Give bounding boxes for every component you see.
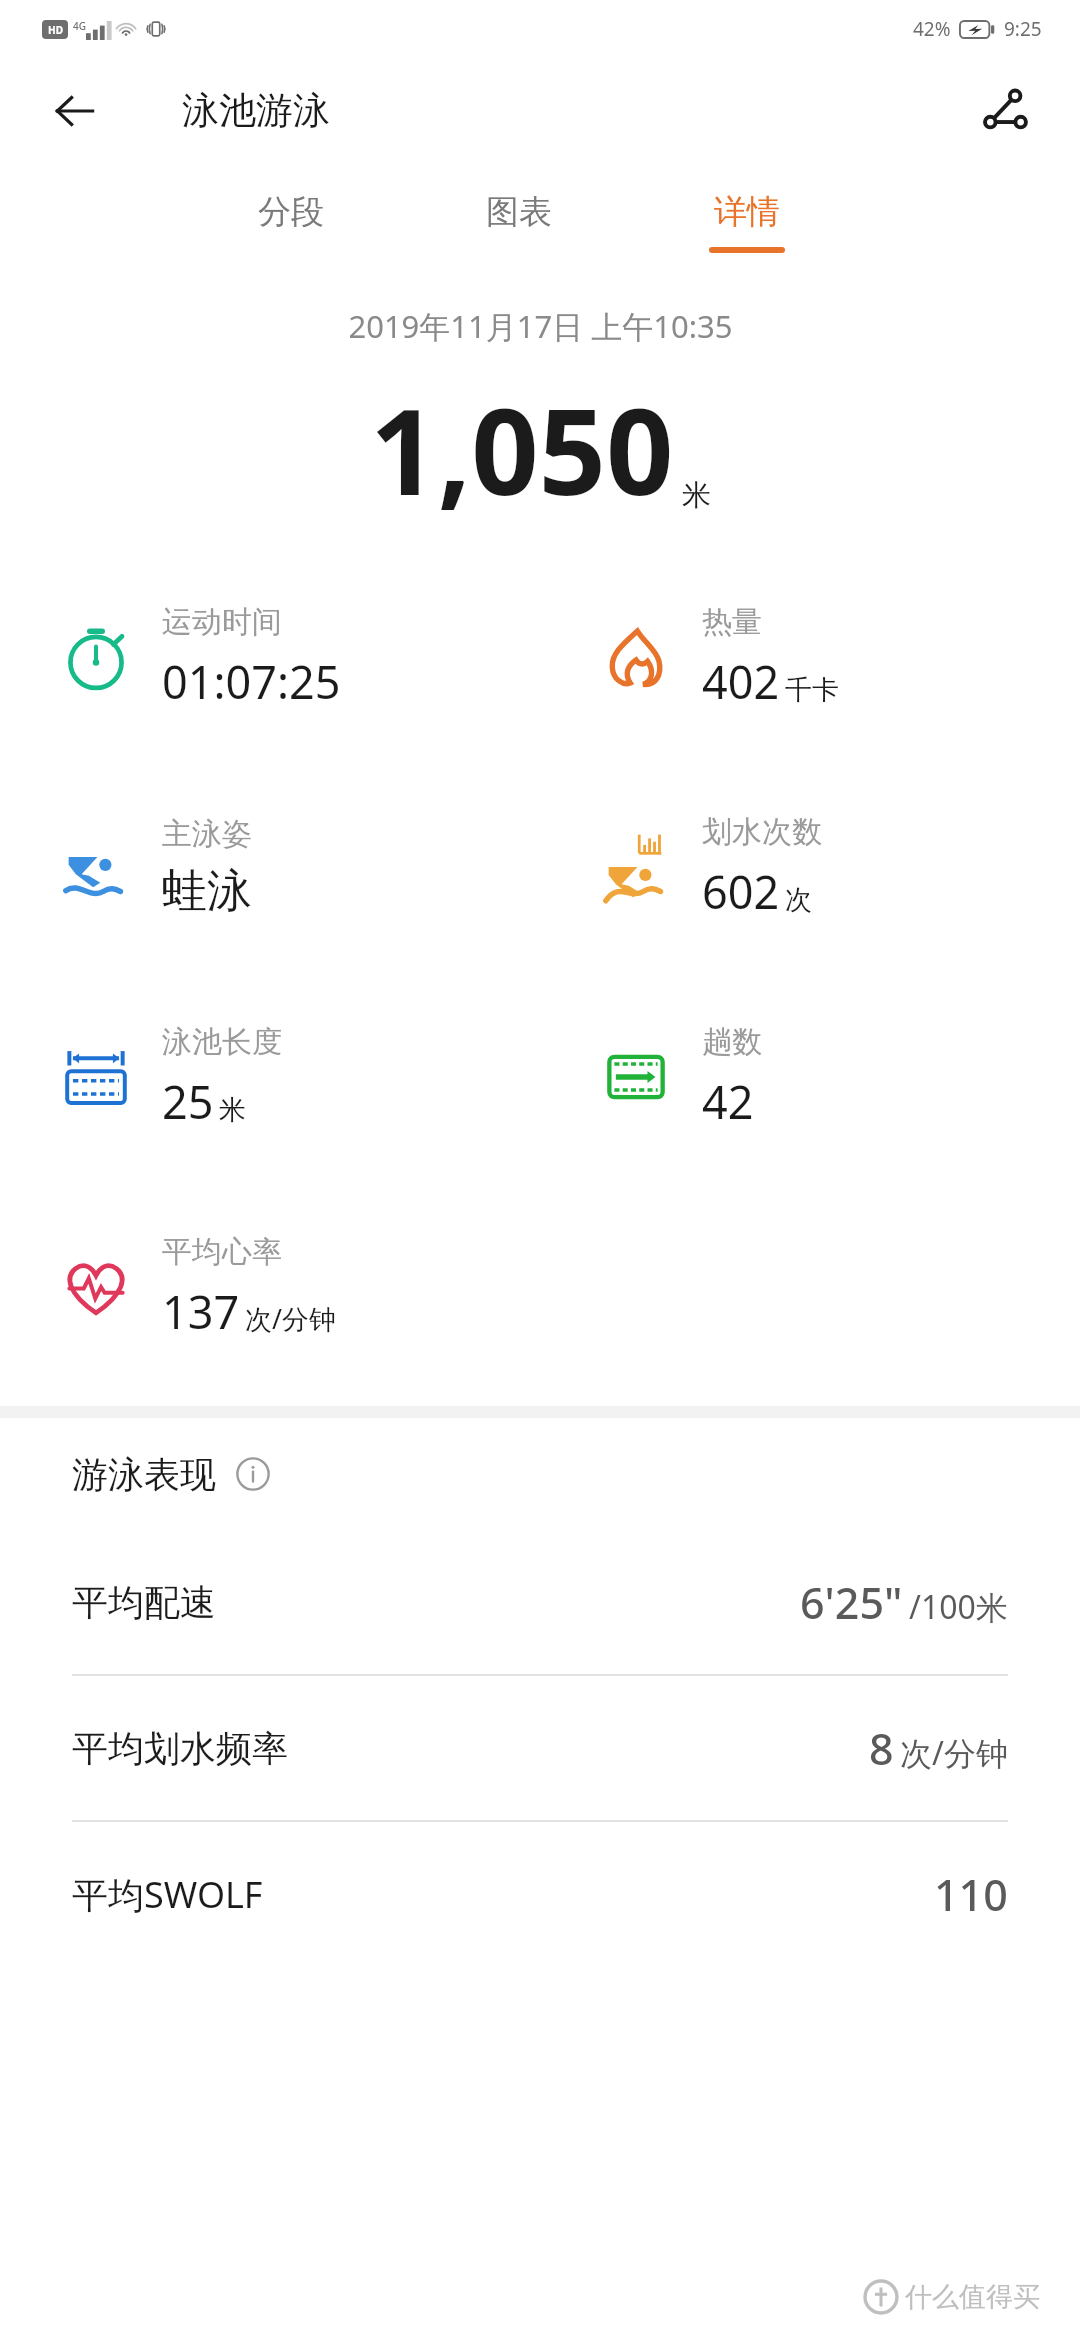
staticText: 01:07:25	[162, 651, 341, 712]
staticText: 趟数	[702, 1023, 762, 1061]
staticText: 泳池游泳	[182, 87, 330, 134]
staticText: 次/分钟	[900, 1731, 1008, 1775]
staticText: 什么值得买	[905, 2280, 1040, 2314]
staticText: 平均心率	[162, 1233, 282, 1271]
button[interactable]: 趟数	[540, 972, 1080, 1182]
staticText: 平均SWOLF	[72, 1870, 263, 1919]
button[interactable]: 图表	[460, 183, 578, 261]
button[interactable]: 热量	[540, 552, 1080, 762]
staticText: 9:25	[1004, 16, 1042, 42]
button[interactable]: 平均配速	[0, 1530, 1080, 1674]
staticText: 137	[162, 1281, 240, 1342]
staticText: 402	[702, 651, 780, 712]
button[interactable]: 运动时间	[0, 552, 540, 762]
button[interactable]: 划水次数	[540, 762, 1080, 972]
staticText: 次	[785, 883, 812, 917]
staticText: 主泳姿	[162, 815, 252, 853]
staticText: 游泳表现	[72, 1452, 216, 1497]
staticText: 蛙泳	[162, 863, 252, 920]
staticText: 泳池长度	[162, 1023, 282, 1061]
button[interactable]: 主泳姿	[0, 762, 540, 972]
button[interactable]: Info	[232, 1453, 274, 1495]
staticText: 2019年11月17日 上午10:35	[348, 305, 733, 347]
staticText: 6'25"	[800, 1573, 903, 1632]
staticText: 8	[869, 1719, 894, 1778]
staticText: 米	[219, 1093, 246, 1127]
button[interactable]: 泳池长度	[0, 972, 540, 1182]
staticText: 千卡	[785, 673, 839, 707]
staticText: 4G	[73, 19, 86, 33]
button[interactable]: 详情	[688, 183, 806, 261]
button[interactable]: Share	[972, 78, 1038, 144]
staticText: 米	[682, 477, 711, 514]
staticText: 详情	[714, 191, 780, 233]
staticText: 42	[702, 1071, 754, 1132]
staticText: 42%	[913, 16, 951, 42]
staticText: 运动时间	[162, 603, 282, 641]
staticText: 热量	[702, 603, 762, 641]
staticText: 图表	[486, 191, 552, 233]
staticText: 110	[934, 1865, 1008, 1924]
staticText: 分段	[258, 191, 324, 233]
staticText: 602	[702, 861, 780, 922]
button[interactable]: Back	[44, 80, 106, 142]
button[interactable]: 平均划水频率	[0, 1676, 1080, 1820]
staticText: 平均配速	[72, 1580, 216, 1625]
button[interactable]: 平均SWOLF	[0, 1822, 1080, 1966]
staticText: 25	[162, 1071, 214, 1132]
staticText: HD	[48, 23, 63, 37]
button[interactable]: 分段	[232, 183, 350, 261]
staticText: 1,050	[370, 369, 674, 530]
staticText: /100米	[909, 1585, 1008, 1629]
staticText: 次/分钟	[245, 1300, 337, 1337]
staticText: 平均划水频率	[72, 1726, 288, 1771]
button[interactable]: 平均心率	[0, 1182, 540, 1392]
staticText: 划水次数	[702, 813, 822, 851]
